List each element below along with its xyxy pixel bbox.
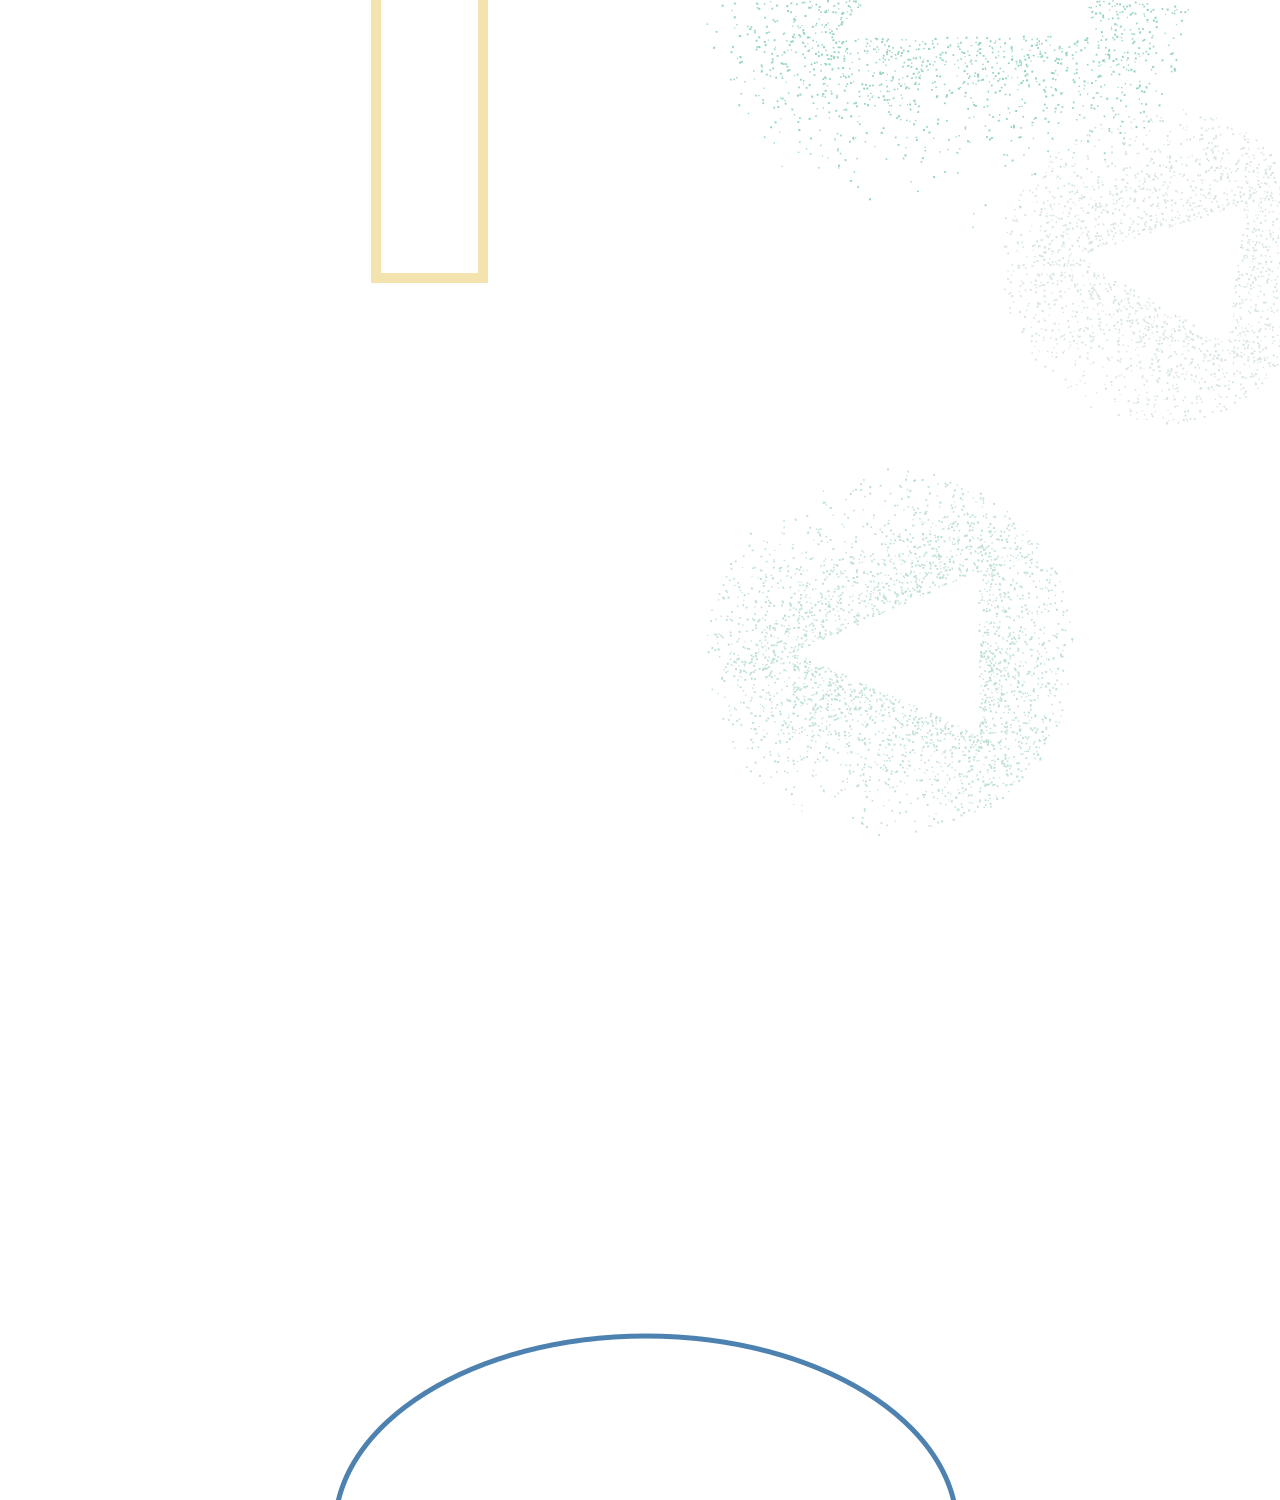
- button[interactable]: Card: [0, 0, 1280, 1500]
- button[interactable]: Play: [0, 0, 1280, 1500]
- button[interactable]: Play: [0, 0, 1280, 1500]
- button[interactable]: Record: [0, 0, 1280, 1500]
- button[interactable]: Play next: [0, 0, 1280, 1500]
